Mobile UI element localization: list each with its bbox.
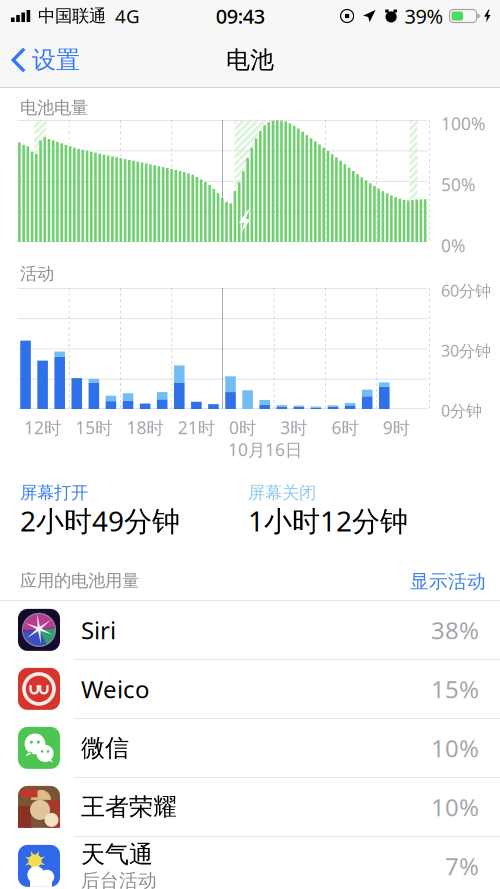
staticText: 6时 — [331, 416, 358, 439]
button[interactable]: Siri — [0, 601, 500, 660]
staticText: 100% — [441, 112, 485, 135]
staticText: 3时 — [280, 416, 307, 439]
staticText: 天气通 — [81, 840, 153, 869]
staticText: 21时 — [178, 416, 215, 439]
staticText: 10% — [431, 732, 479, 764]
staticText: 15时 — [75, 416, 112, 439]
staticText: 10月16日 — [228, 438, 302, 461]
staticText: 60分钟 — [441, 280, 491, 301]
staticText: 0分钟 — [441, 400, 482, 421]
staticText: 0时 — [229, 416, 256, 439]
staticText: 中国联通 — [38, 5, 106, 27]
staticText: 应用的电池用量 — [20, 570, 139, 591]
button[interactable]: 微信 — [0, 719, 500, 778]
staticText: Weico — [81, 673, 150, 705]
button[interactable]: 设置 — [0, 32, 90, 88]
staticText: 电池电量 — [20, 97, 88, 118]
staticText: 设置 — [32, 45, 80, 75]
staticText: 1小时12分钟 — [248, 502, 408, 539]
button[interactable]: 天气通 — [0, 837, 500, 889]
staticText: 12时 — [24, 416, 61, 439]
button[interactable]: 王者荣耀 — [0, 778, 500, 837]
staticText: 39% — [405, 3, 444, 29]
staticText: 4G — [115, 4, 140, 28]
staticText: 10% — [431, 791, 479, 823]
staticText: 微信 — [81, 733, 129, 763]
staticText: 09:43 — [216, 3, 265, 29]
staticText: 15% — [431, 673, 479, 705]
staticText: 18时 — [126, 416, 163, 439]
staticText: 后台活动 — [81, 869, 157, 889]
staticText: Siri — [81, 614, 116, 646]
staticText: 电池 — [226, 45, 274, 75]
button[interactable]: Weico — [0, 660, 500, 719]
staticText: 9时 — [383, 416, 410, 439]
staticText: 显示活动 — [410, 570, 486, 593]
staticText: 7% — [445, 850, 479, 882]
staticText: 2小时49分钟 — [20, 502, 180, 539]
button[interactable]: 显示活动 — [404, 564, 492, 599]
staticText: 屏幕打开 — [20, 482, 88, 503]
staticText: 38% — [431, 614, 479, 646]
staticText: 活动 — [20, 263, 54, 284]
staticText: 王者荣耀 — [81, 792, 177, 822]
staticText: 50% — [441, 173, 475, 196]
staticText: 屏幕关闭 — [248, 482, 316, 503]
staticText: 30分钟 — [441, 340, 491, 361]
staticText: 0% — [441, 234, 465, 257]
